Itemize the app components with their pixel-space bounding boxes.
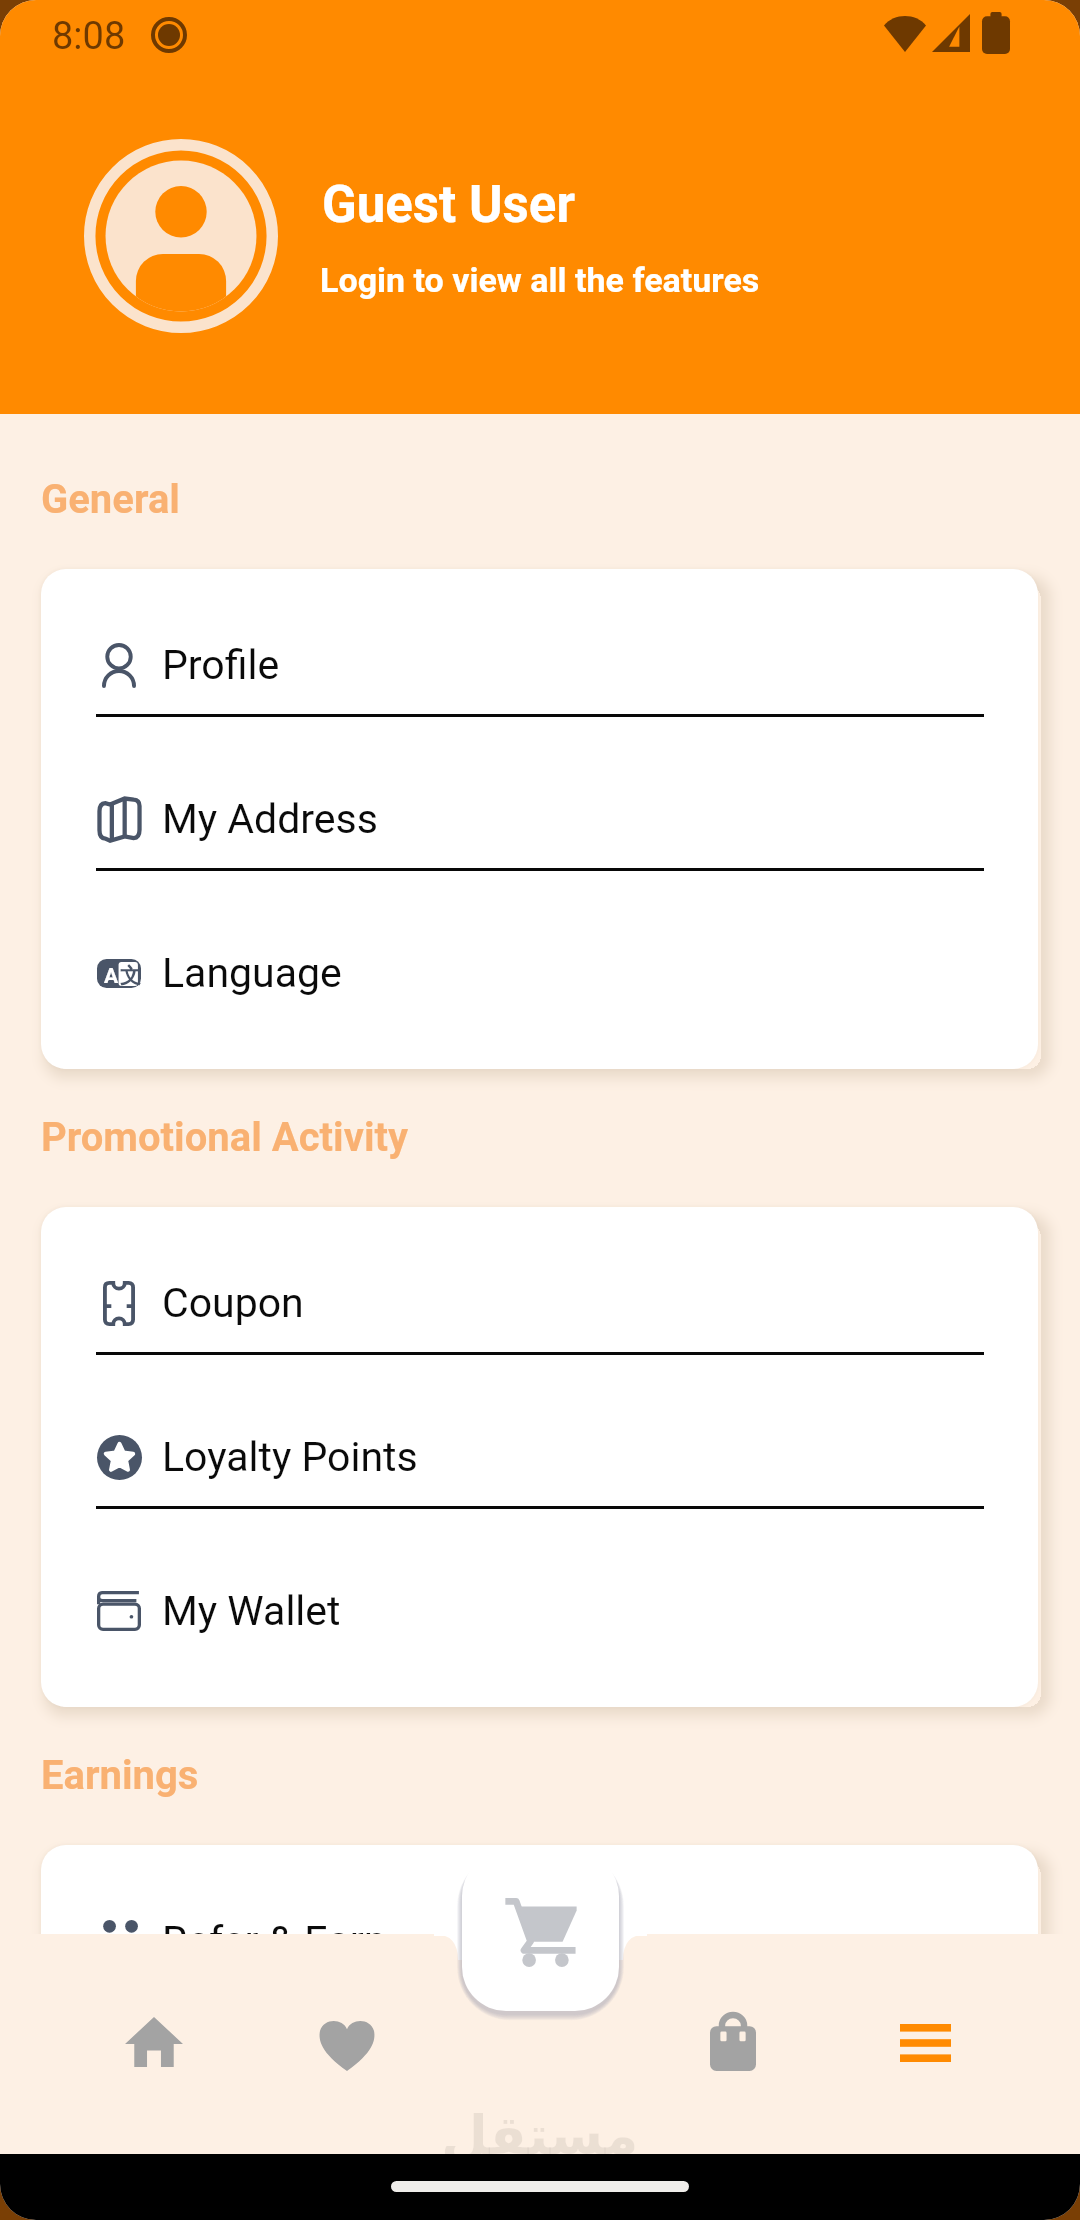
button[interactable]: A [41,924,1038,1022]
staticText: Loyalty Points [162,1433,418,1481]
staticText: Login to view all the features [320,260,760,300]
button[interactable]: My Wallet [41,1562,1038,1660]
staticText: Guest User [322,175,576,235]
button[interactable]: My Address [41,770,1038,868]
button[interactable]: Orders [670,1970,796,2116]
button[interactable]: Home [85,1972,223,2112]
staticText: 8:08 [52,14,126,59]
staticText: A [104,964,119,989]
button[interactable]: My Earnings [41,2046,1038,2144]
staticText: 文 [120,963,141,989]
staticText: My Address [162,795,378,843]
button[interactable]: Loyalty Points [41,1408,1038,1506]
staticText: Profile [162,641,280,689]
staticText: مستقل [441,2104,639,2167]
button[interactable]: Menu [860,1979,991,2107]
staticText: Refer & Earn [162,1917,387,1965]
button[interactable]: Coupon [41,1254,1038,1352]
staticText: Language [162,949,342,997]
staticText: Promotional Activity [41,1114,409,1161]
button[interactable]: Cart [462,1852,619,2011]
button[interactable]: Refer & Earn [41,1892,1038,1990]
button[interactable]: Favourites [278,1973,416,2116]
staticText: Earnings [41,1752,199,1799]
button[interactable]: Profile [41,616,1038,714]
staticText: My Wallet [162,1587,341,1635]
staticText: General [41,476,180,523]
staticText: Coupon [162,1279,304,1327]
